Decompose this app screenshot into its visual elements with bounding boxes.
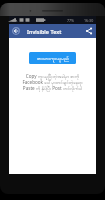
staticText: Copy ကူးယူပြီးတဲ့အခါမှာ စာကို Facebook ပ… [22,73,83,93]
staticText: 16:30 [84,18,94,23]
button[interactable]: Share [82,24,95,38]
button[interactable]: Back [9,24,23,38]
staticText: စာသားကူးယူမည် [37,55,69,62]
staticText: Invisible Text [27,28,62,35]
button[interactable]: စာသားကူးယူမည် [29,52,76,64]
staticText: 77% [67,18,75,23]
